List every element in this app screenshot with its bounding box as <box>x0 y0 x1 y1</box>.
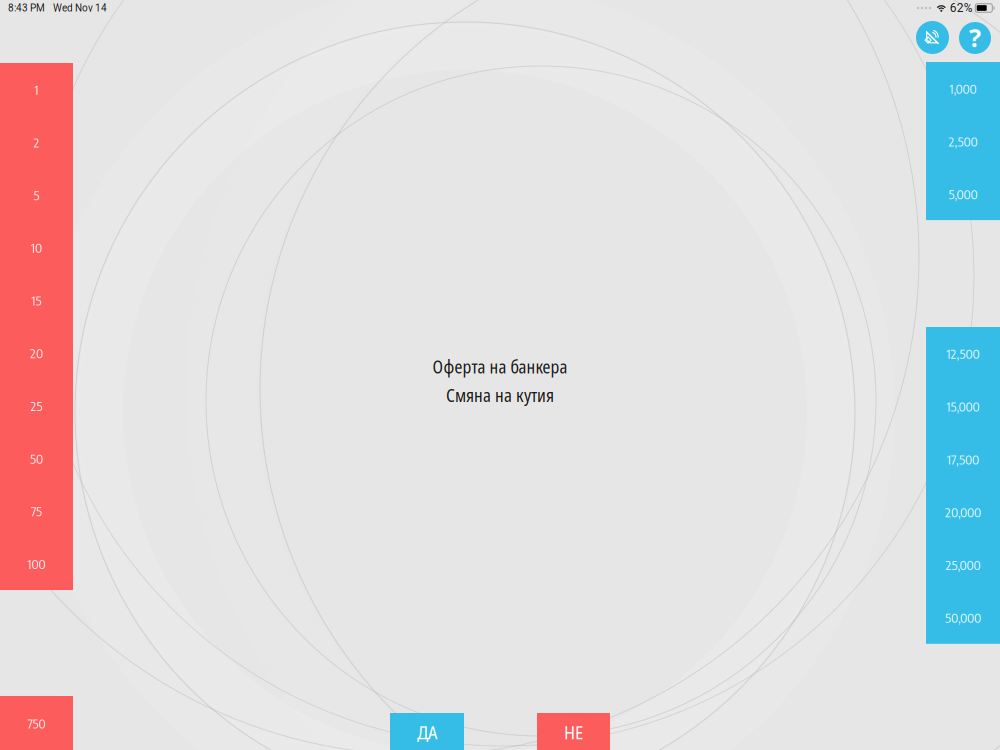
staticText: 15,000 <box>946 398 979 415</box>
staticText: Wed Nov 14 <box>45 2 107 14</box>
button[interactable]: 5 <box>0 168 73 221</box>
button[interactable]: 15,000 <box>926 380 1000 433</box>
button[interactable]: 20 <box>0 326 73 379</box>
button[interactable]: Mute sound <box>916 21 949 54</box>
button[interactable]: 2 <box>0 116 73 168</box>
staticText: 75 <box>31 503 42 519</box>
button[interactable]: Help <box>959 22 991 54</box>
staticText: 50,000 <box>945 609 981 626</box>
button[interactable]: 17,500 <box>926 433 1000 485</box>
button[interactable]: 25 <box>0 379 73 432</box>
staticText: 5 <box>33 186 39 203</box>
button[interactable]: 5,000 <box>926 167 1000 220</box>
staticText: 10 <box>31 239 42 256</box>
staticText: 20 <box>30 344 43 361</box>
staticText: 12,500 <box>946 345 979 362</box>
staticText: 750 <box>27 715 45 731</box>
staticText: 62% <box>950 1 973 15</box>
staticText: 15 <box>31 292 41 308</box>
staticText: Смяна на кутия <box>446 383 554 407</box>
button[interactable]: 2,500 <box>926 115 1000 167</box>
button[interactable]: 1 <box>0 63 73 116</box>
staticText: 25,000 <box>945 556 980 573</box>
staticText: 50 <box>30 450 43 467</box>
staticText: 8:43 PM <box>8 2 45 14</box>
staticText: 5,000 <box>948 185 977 202</box>
staticText: ? <box>969 21 981 54</box>
staticText: 20,000 <box>945 503 981 520</box>
button[interactable]: НЕ <box>537 713 610 750</box>
button[interactable]: 750 <box>0 696 73 750</box>
staticText: 17,500 <box>947 451 979 467</box>
staticText: НЕ <box>564 719 583 745</box>
button[interactable]: 75 <box>0 485 73 537</box>
button[interactable]: 1,000 <box>926 62 1000 115</box>
button[interactable]: 10 <box>0 221 73 274</box>
staticText: Оферта на банкера <box>432 355 567 378</box>
staticText: ДА <box>417 719 437 745</box>
button[interactable]: 100 <box>0 537 73 590</box>
staticText: 100 <box>27 555 45 572</box>
button[interactable]: 50,000 <box>926 591 1000 644</box>
button[interactable]: 25,000 <box>926 538 1000 591</box>
button[interactable]: 12,500 <box>926 327 1000 380</box>
button[interactable]: ДА <box>390 713 464 750</box>
staticText: 1,000 <box>949 80 976 97</box>
button[interactable]: 15 <box>0 274 73 326</box>
button[interactable]: 50 <box>0 432 73 485</box>
button[interactable]: 20,000 <box>926 485 1000 538</box>
staticText: 1 <box>34 81 38 98</box>
staticText: 2 <box>33 134 39 150</box>
staticText: 25 <box>30 397 42 414</box>
staticText: 2,500 <box>948 133 977 149</box>
